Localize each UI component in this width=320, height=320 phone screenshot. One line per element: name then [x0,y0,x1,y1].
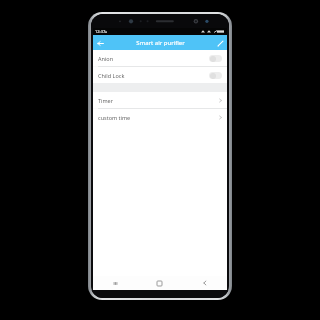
staticText: Smart air purifier [136,39,185,47]
button[interactable]: Child Lock [93,67,227,83]
button[interactable]: Timer [93,92,227,108]
staticText: 12:37 [95,29,106,34]
staticText: Timer [98,97,219,104]
button[interactable]: Recents [93,276,137,290]
button[interactable]: Edit [213,36,227,50]
staticText: custom time [98,114,219,121]
button[interactable]: Back [182,276,227,290]
button[interactable]: Home [137,276,182,290]
button[interactable]: Back [93,36,107,50]
staticText: Child Lock [98,72,209,79]
button[interactable]: Anion [93,50,227,66]
staticText: Anion [98,55,209,62]
button[interactable]: custom time [93,109,227,125]
